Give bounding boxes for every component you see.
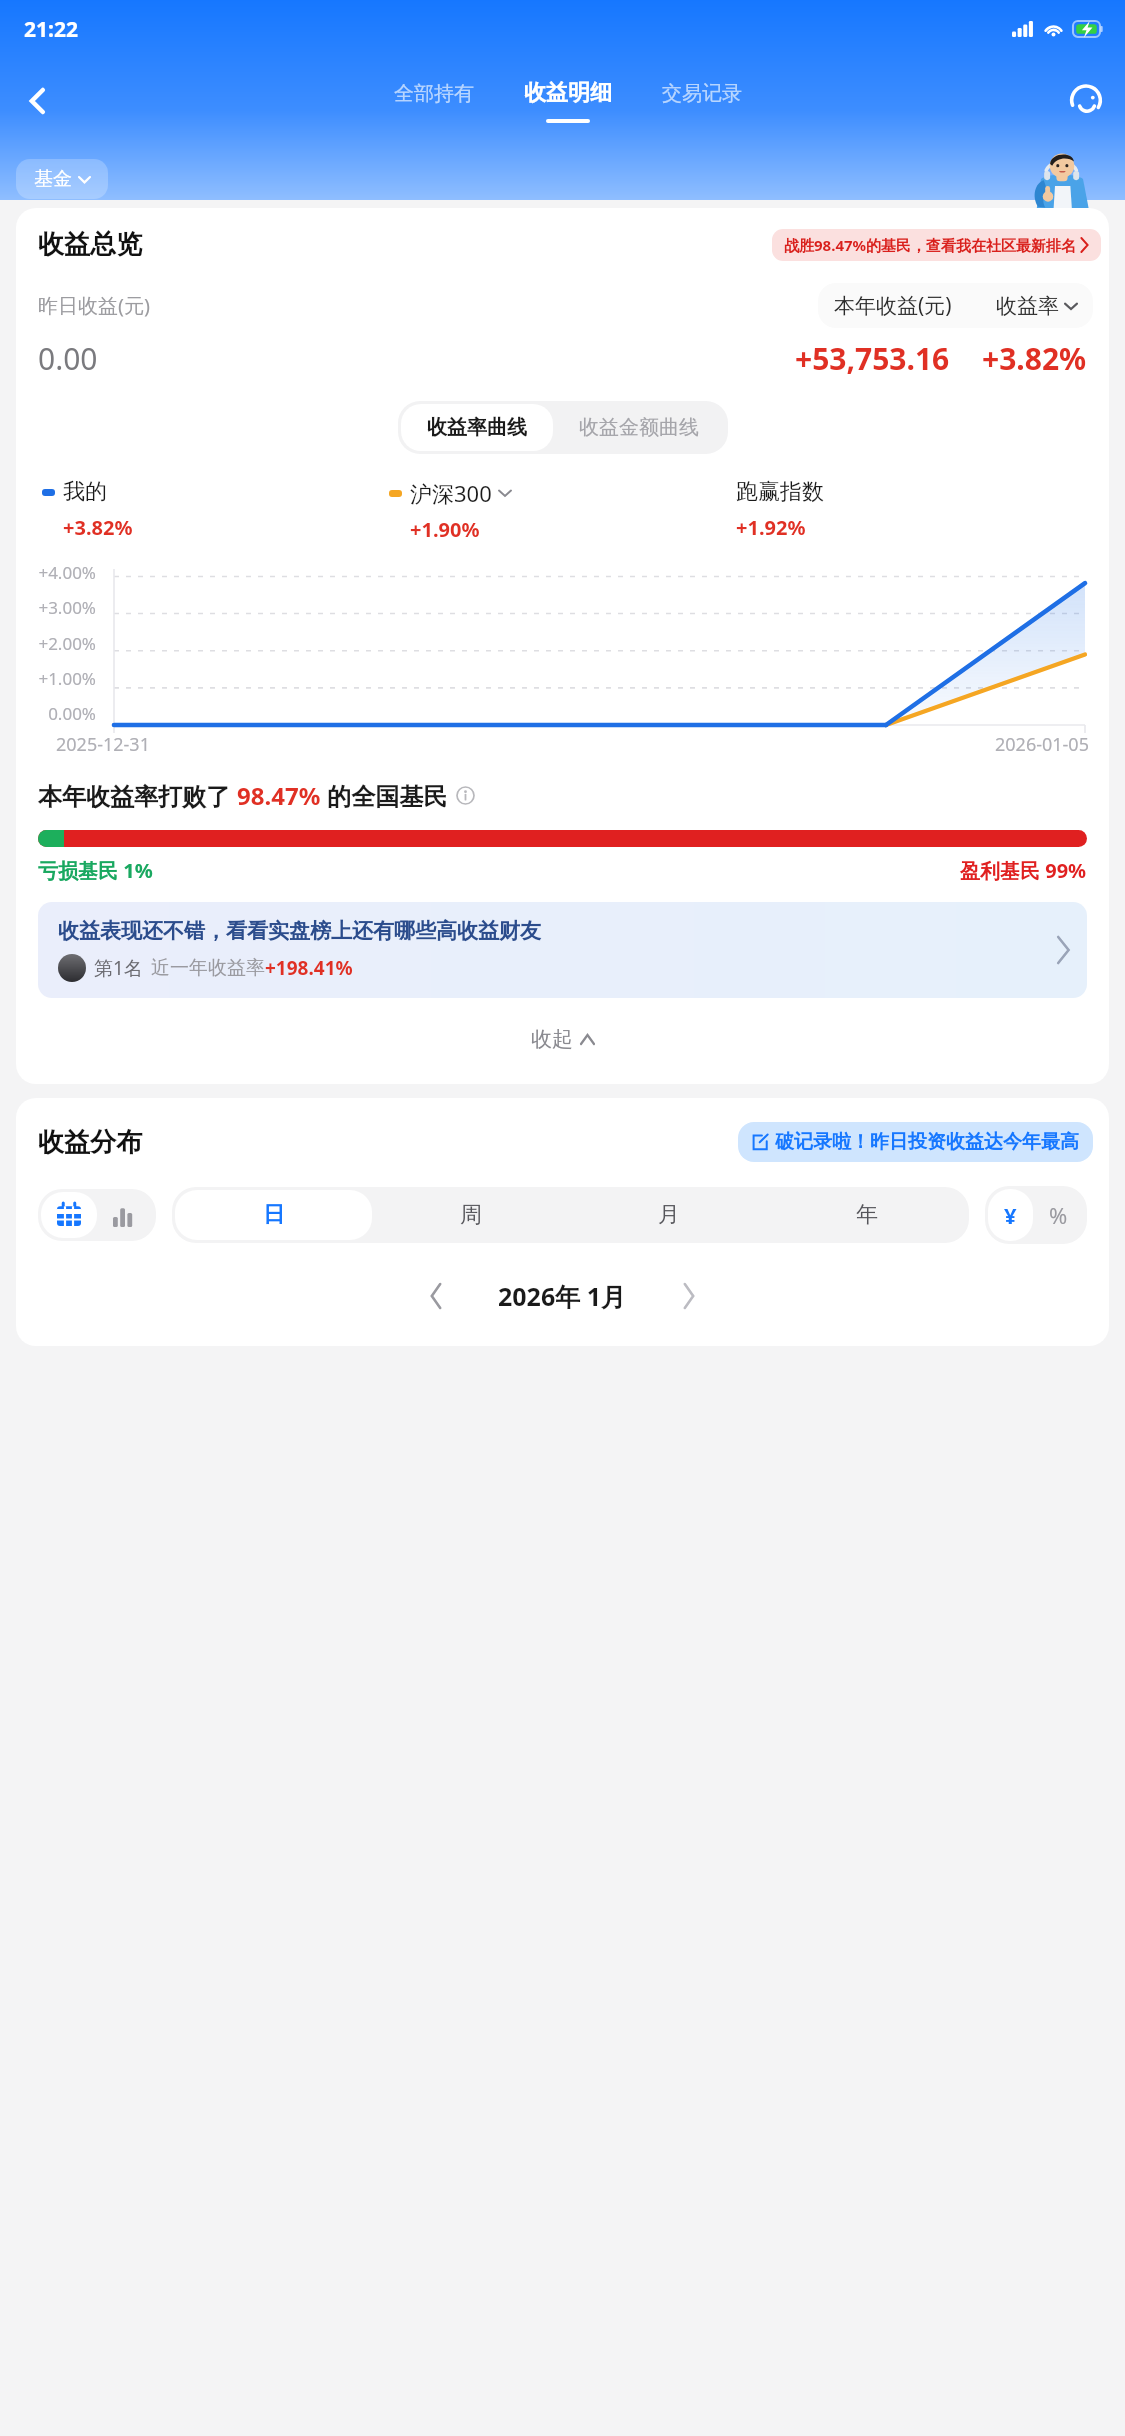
staticText: 全部持有	[394, 81, 474, 106]
staticText: 盈利基民 99%	[960, 857, 1087, 884]
staticText: 收益率	[996, 293, 1059, 319]
button[interactable]: 破记录啦！昨日投资收益达今年最高	[738, 1122, 1093, 1162]
staticText: 沪深300	[410, 478, 492, 508]
staticText: +1.90%	[410, 516, 480, 543]
button[interactable]: Next month	[659, 1266, 719, 1326]
staticText: +3.82%	[63, 514, 133, 541]
button[interactable]: 跑赢指数	[736, 478, 1083, 541]
staticText: 的全国基民	[321, 779, 448, 812]
button[interactable]: 周	[372, 1190, 570, 1240]
button[interactable]: 全部持有	[392, 81, 476, 122]
staticText: 收益表现还不错，看看实盘榜上还有哪些高收益财友	[58, 918, 541, 944]
button[interactable]: 沪深300	[389, 478, 736, 543]
staticText: 年	[856, 1201, 878, 1229]
button[interactable]: Calendar view	[41, 1192, 97, 1238]
button[interactable]: 年	[768, 1190, 966, 1240]
staticText: 昨日收益(元)	[38, 292, 150, 319]
staticText: +3.00%	[34, 596, 96, 619]
staticText: 日	[263, 1201, 285, 1229]
staticText: 收益金额曲线	[579, 415, 699, 440]
staticText: 周	[460, 1201, 482, 1229]
staticText: %	[1049, 1200, 1068, 1230]
staticText: 近一年收益率	[151, 956, 265, 980]
staticText: 收益总览	[38, 228, 142, 261]
staticText: 2025-12-31	[56, 732, 150, 757]
button[interactable]: %	[1033, 1189, 1084, 1241]
staticText: +1.00%	[34, 667, 96, 690]
staticText: 0.00	[38, 338, 98, 379]
button[interactable]: 月	[570, 1190, 768, 1240]
staticText: 2026年 1月	[498, 1279, 627, 1313]
staticText: 收益分布	[38, 1126, 142, 1159]
button[interactable]: Back	[12, 75, 64, 127]
button[interactable]: 收益率曲线	[401, 404, 553, 451]
staticText: 第1名	[94, 955, 143, 981]
staticText: 收起	[531, 1026, 573, 1052]
staticText: ¥	[1004, 1200, 1017, 1230]
button[interactable]: 收益明细	[522, 79, 614, 123]
button[interactable]: 交易记录	[660, 81, 744, 122]
staticText: 收益明细	[524, 79, 612, 107]
staticText: 破记录啦！昨日投资收益达今年最高	[775, 1130, 1079, 1154]
staticText: 我的	[63, 478, 107, 506]
staticText: 0.00%	[34, 702, 96, 725]
staticText: 亏损基民 1%	[38, 857, 153, 884]
button[interactable]: 本年收益(元)	[818, 283, 1093, 328]
button[interactable]: 基金	[16, 159, 108, 199]
button[interactable]: 收益金额曲线	[553, 404, 725, 451]
staticText: 本年收益(元)	[834, 291, 952, 320]
button[interactable]: 收益表现还不错，看看实盘榜上还有哪些高收益财友	[38, 902, 1087, 998]
staticText: 跑赢指数	[736, 478, 824, 506]
staticText: 交易记录	[662, 81, 742, 106]
staticText: 月	[658, 1201, 680, 1229]
staticText: 本年收益率打败了	[38, 779, 237, 812]
staticText: +198.41%	[265, 955, 353, 981]
staticText: 基金	[34, 167, 72, 191]
staticText: +3.82%	[982, 338, 1087, 379]
staticText: +1.92%	[736, 514, 806, 541]
staticText: 98.47%	[237, 779, 321, 812]
staticText: 收益率曲线	[427, 415, 527, 440]
button[interactable]: 战胜98.47%的基民，查看我在社区最新排名	[772, 229, 1101, 261]
button[interactable]: Customer service	[1061, 76, 1111, 126]
staticText: 2026-01-05	[995, 732, 1089, 757]
button[interactable]: 日	[175, 1190, 372, 1240]
button[interactable]: ¥	[988, 1189, 1033, 1241]
staticText: 战胜98.47%的基民，查看我在社区最新排名	[784, 235, 1077, 255]
staticText: +4.00%	[34, 561, 96, 584]
button[interactable]: Bar chart view	[97, 1192, 153, 1238]
button[interactable]: 收起	[16, 1020, 1109, 1058]
staticText: +2.00%	[34, 632, 96, 655]
staticText: +53,753.16	[795, 338, 950, 379]
staticText: 21:22	[24, 15, 78, 44]
button[interactable]: 我的	[42, 478, 389, 541]
button[interactable]: Previous month	[406, 1266, 466, 1326]
